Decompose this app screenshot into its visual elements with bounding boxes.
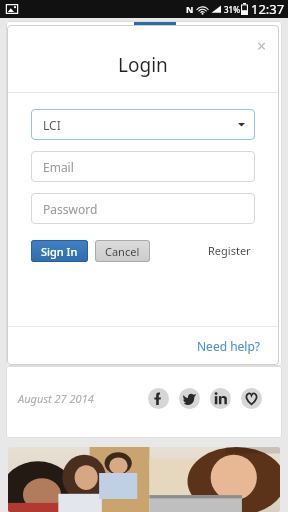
staticText: August 27 2014 [18, 391, 94, 406]
staticText: N [186, 3, 194, 15]
staticText: Register [208, 243, 251, 258]
button[interactable]: Twitter [179, 388, 200, 409]
button[interactable]: Need help? [193, 334, 265, 358]
staticText: × [257, 35, 267, 53]
button[interactable]: LCI [31, 109, 255, 140]
button[interactable]: Favorite [241, 388, 262, 409]
staticText: Login [118, 52, 168, 78]
staticText: LCI [43, 117, 61, 133]
staticText: Email [43, 159, 74, 175]
button[interactable]: Sign In [31, 240, 88, 262]
button[interactable]: Email [31, 151, 255, 182]
button[interactable]: LinkedIn [210, 388, 231, 409]
button[interactable]: Facebook [148, 388, 169, 409]
button[interactable]: Register [204, 239, 255, 262]
staticText: Sign In [41, 244, 78, 259]
button[interactable]: Password [31, 193, 255, 224]
staticText: 31% [224, 4, 240, 15]
staticText: Password [43, 201, 98, 217]
staticText: Need help? [197, 338, 261, 354]
button[interactable]: Cancel [95, 240, 150, 262]
staticText: Cancel [105, 244, 140, 259]
staticText: 12:37 [251, 0, 285, 18]
button[interactable]: Close [253, 35, 271, 53]
